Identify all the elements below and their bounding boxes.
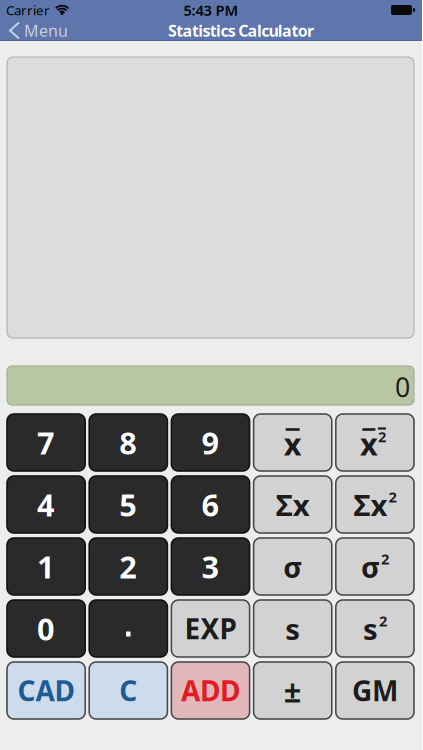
staticText: ADD — [181, 672, 240, 709]
button[interactable]: EXP — [171, 600, 250, 657]
staticText: 5 — [119, 484, 137, 525]
button[interactable]: Σx — [336, 476, 414, 533]
staticText: Σx — [276, 485, 310, 524]
staticText: Carrier — [6, 1, 50, 19]
button[interactable]: Σx — [254, 476, 332, 533]
button[interactable]: 5 — [89, 476, 167, 533]
staticText: σ — [283, 547, 302, 586]
staticText: 7 — [37, 422, 55, 463]
button[interactable]: 6 — [171, 476, 250, 533]
button[interactable]: 9 — [171, 414, 250, 471]
button[interactable]: C — [89, 662, 167, 719]
staticText: 0 — [395, 369, 410, 405]
staticText: Menu — [24, 20, 68, 41]
button[interactable]: 3 — [171, 538, 250, 595]
button[interactable]: s — [254, 600, 332, 657]
staticText: GM — [352, 672, 398, 709]
staticText: Σx — [353, 485, 387, 524]
staticText: 3 — [201, 546, 219, 587]
button[interactable]: ± — [254, 662, 332, 719]
staticText: EXP — [184, 610, 236, 647]
staticText: C — [119, 672, 137, 709]
staticText: 2 — [388, 487, 396, 506]
staticText: 2 — [378, 427, 386, 446]
staticText: s — [285, 609, 300, 648]
button[interactable]: σ — [336, 538, 414, 595]
staticText: ± — [284, 670, 302, 711]
button[interactable]: Decimal point — [89, 600, 167, 657]
staticText: 5:43 PM — [183, 0, 238, 20]
staticText: σ — [361, 547, 380, 586]
staticText: Statistics Calculator — [168, 20, 314, 41]
staticText: 9 — [201, 422, 219, 463]
staticText: 2 — [379, 611, 387, 630]
button[interactable]: s — [336, 600, 414, 657]
staticText: s — [363, 609, 378, 648]
staticText: 2 — [119, 546, 137, 587]
button[interactable]: x — [254, 414, 332, 471]
button[interactable]: Menu — [0, 20, 68, 41]
button[interactable]: GM — [336, 662, 414, 719]
staticText: CAD — [18, 672, 75, 709]
staticText: 4 — [37, 484, 55, 525]
button[interactable]: 4 — [7, 476, 85, 533]
button[interactable]: 7 — [7, 414, 85, 471]
staticText: 0 — [37, 608, 55, 649]
button[interactable]: 8 — [89, 414, 167, 471]
button[interactable]: 1 — [7, 538, 85, 595]
button[interactable]: 0 — [7, 600, 85, 657]
button[interactable]: ADD — [171, 662, 250, 719]
staticText: 2 — [381, 549, 389, 568]
button[interactable]: 2 — [89, 538, 167, 595]
button[interactable]: x — [336, 414, 414, 471]
button[interactable]: σ — [254, 538, 332, 595]
button[interactable]: CAD — [7, 662, 85, 719]
staticText: 6 — [201, 484, 219, 525]
staticText: 8 — [119, 422, 137, 463]
staticText: x — [284, 423, 302, 464]
staticText: x — [360, 423, 378, 464]
staticText: 1 — [37, 546, 55, 587]
